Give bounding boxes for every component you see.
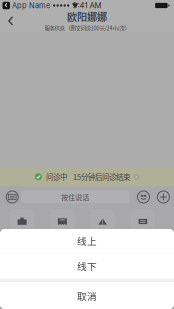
button[interactable]: Keyboard bbox=[0, 186, 21, 207]
staticText: 线下 bbox=[77, 259, 97, 273]
button[interactable]: Back bbox=[0, 11, 22, 32]
staticText: 线上 bbox=[77, 233, 97, 247]
button[interactable]: Photo album bbox=[42, 209, 82, 233]
staticText: 按住说话 bbox=[61, 192, 89, 202]
button[interactable]: Emoji bbox=[129, 186, 149, 207]
button[interactable]: Camera bbox=[2, 209, 42, 233]
staticText: 9:41 AM bbox=[72, 1, 101, 10]
staticText: 欧阳娜娜 bbox=[67, 9, 107, 24]
button[interactable]: Send file bbox=[82, 209, 123, 233]
button[interactable]: Payment card bbox=[123, 209, 163, 233]
button[interactable]: Dismiss bbox=[130, 174, 139, 179]
button[interactable]: More options bbox=[149, 186, 174, 207]
staticText: 服务信息 （图文问诊100元/24小/次） bbox=[44, 24, 129, 32]
staticText: App Name bbox=[12, 1, 50, 10]
staticText: 15分钟后问诊结束 bbox=[73, 171, 130, 182]
button[interactable]: 线下 bbox=[0, 253, 174, 279]
button[interactable]: 取消 bbox=[0, 282, 174, 309]
staticText: 取消 bbox=[77, 289, 97, 303]
staticText: 问诊中 bbox=[46, 171, 67, 182]
button[interactable]: 线上 bbox=[0, 229, 174, 252]
